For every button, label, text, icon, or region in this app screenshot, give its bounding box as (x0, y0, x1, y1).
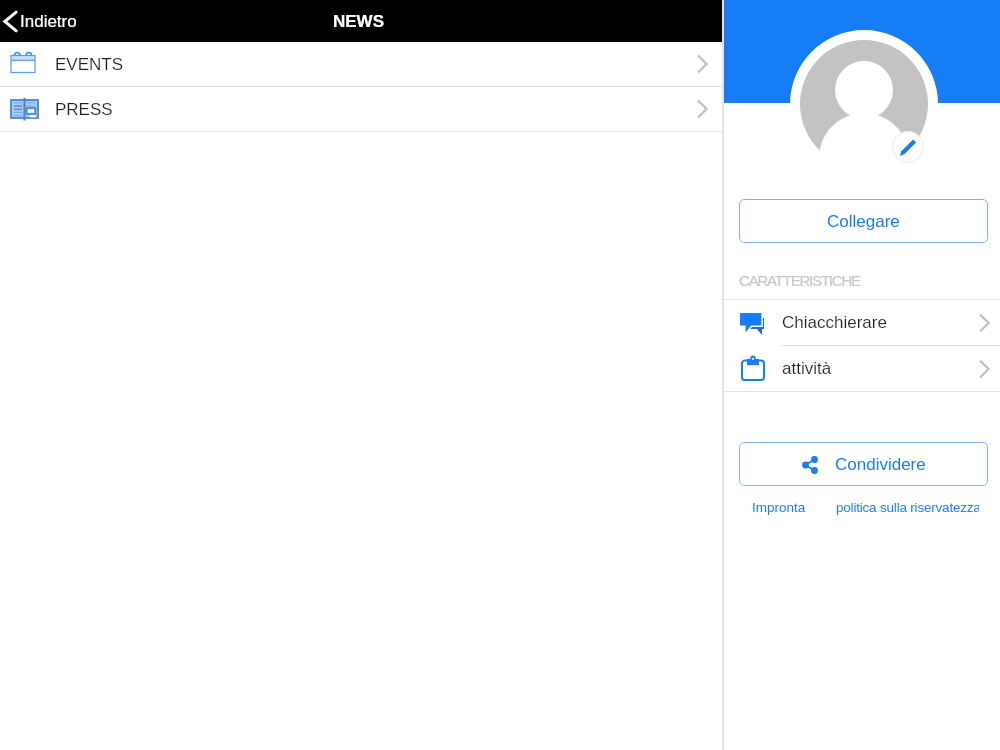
staticText: PRESS (55, 100, 113, 119)
button[interactable]: Impronta (748, 498, 810, 517)
staticText: Indietro (20, 12, 77, 31)
button[interactable]: Indietro (0, 7, 85, 36)
button[interactable]: EVENTS (0, 42, 722, 86)
button[interactable]: politica sulla riservatezza (832, 498, 983, 517)
staticText: CARATTERISTICHE (739, 272, 860, 289)
staticText: NEWS (333, 12, 384, 31)
button[interactable]: PRESS (0, 87, 722, 131)
button[interactable]: Chiacchierare (724, 300, 1000, 345)
button[interactable]: Condividere (739, 442, 988, 486)
button[interactable]: attività (724, 346, 1000, 391)
button[interactable]: Collegare (739, 199, 988, 243)
staticText: Chiacchierare (782, 313, 887, 332)
button[interactable]: Edit profile picture (892, 131, 924, 163)
staticText: Condividere (835, 455, 926, 474)
staticText: EVENTS (55, 55, 124, 74)
staticText: attività (782, 359, 832, 378)
staticText: Collegare (827, 212, 900, 231)
